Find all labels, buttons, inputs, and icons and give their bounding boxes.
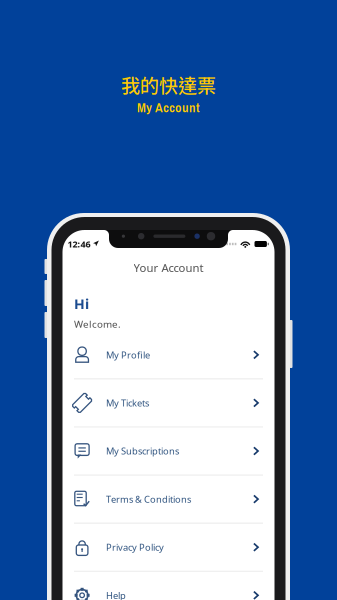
button[interactable]: Help: [62, 572, 274, 600]
staticText: Help: [106, 589, 126, 600]
button[interactable]: Privacy Policy: [62, 524, 274, 571]
staticText: My Tickets: [106, 397, 149, 409]
staticText: My Profile: [106, 348, 150, 361]
staticText: Welcome.: [74, 317, 121, 331]
staticText: Hi: [74, 294, 89, 314]
staticText: Terms & Conditions: [106, 493, 191, 505]
button[interactable]: My Tickets: [62, 379, 274, 426]
button[interactable]: Terms & Conditions: [62, 475, 274, 523]
staticText: My Account: [137, 99, 200, 116]
staticText: 我的快達票: [121, 71, 216, 98]
staticText: 12:46: [67, 238, 90, 250]
staticText: My Subscriptions: [106, 445, 179, 457]
staticText: Your Account: [133, 260, 203, 275]
button[interactable]: My Subscriptions: [62, 427, 274, 475]
button[interactable]: My Profile: [62, 331, 274, 378]
staticText: Privacy Policy: [106, 541, 164, 554]
